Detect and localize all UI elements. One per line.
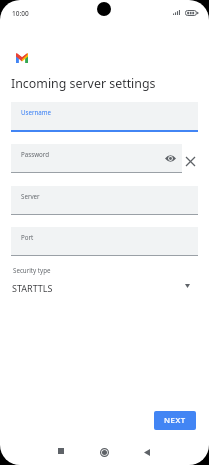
button[interactable]: Recent apps [51, 441, 71, 461]
button[interactable]: Port [11, 227, 198, 257]
button[interactable]: Security type [12, 266, 198, 296]
button[interactable]: Server [11, 186, 198, 216]
staticText: Incoming server settings [11, 75, 156, 92]
staticText: Username [21, 108, 52, 116]
staticText: Server [21, 192, 40, 200]
button[interactable]: Username [11, 102, 198, 132]
button[interactable]: Show password [163, 151, 178, 166]
staticText: Security type [13, 266, 51, 274]
staticText: Password [21, 150, 49, 158]
button[interactable]: NEXT [154, 411, 196, 430]
staticText: STARTTLS [12, 282, 53, 294]
button[interactable]: Password [11, 144, 182, 174]
staticText: NEXT [164, 415, 186, 426]
button[interactable]: Clear [183, 154, 198, 169]
button[interactable]: Back [137, 442, 157, 462]
staticText: Port [21, 233, 34, 241]
button[interactable]: Home [94, 442, 114, 462]
staticText: 10:00 [12, 9, 29, 18]
